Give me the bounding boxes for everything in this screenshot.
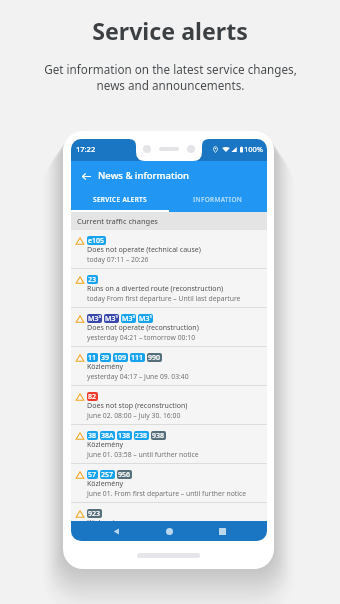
staticText: 100%: [244, 144, 264, 154]
staticText: M3¹: [139, 314, 152, 323]
staticText: M3³: [122, 314, 135, 323]
staticText: 23: [88, 275, 97, 284]
staticText: Current traffic changes: [77, 216, 158, 226]
button[interactable]: Home: [161, 523, 177, 539]
staticText: e105: [88, 236, 105, 245]
staticText: today 07:11 – 20:26: [87, 255, 149, 264]
staticText: June 01. 03:58 – until further notice: [87, 450, 199, 459]
staticText: Service alerts: [92, 15, 248, 47]
staticText: 938: [152, 431, 165, 440]
staticText: 923: [88, 509, 101, 518]
staticText: M3³: [88, 314, 101, 323]
button[interactable]: e105: [71, 230, 267, 268]
button[interactable]: 57: [71, 464, 267, 502]
staticText: Does not operate (technical cause): [87, 244, 201, 254]
staticText: 109: [114, 353, 127, 362]
button[interactable]: Recents: [214, 523, 230, 539]
staticText: 990: [148, 353, 161, 362]
staticText: Közlemény: [87, 361, 124, 371]
staticText: yesterday 04:21 – tomorrow 00:10: [87, 333, 196, 342]
staticText: INFORMATION: [193, 195, 243, 204]
staticText: Get information on the latest service ch…: [44, 61, 297, 93]
staticText: News & information: [98, 169, 189, 182]
staticText: 82: [88, 392, 97, 401]
button[interactable]: 11: [71, 347, 267, 385]
staticText: 11: [88, 353, 97, 362]
staticText: 38: [88, 431, 97, 440]
staticText: June 01. From first departure – until fu…: [87, 489, 247, 498]
staticText: Runs on a diverted route (reconstruction…: [87, 283, 224, 293]
staticText: today From first departure – Until last …: [87, 294, 241, 303]
staticText: 57: [88, 470, 97, 479]
button[interactable]: Back: [108, 523, 124, 539]
staticText: 138: [118, 431, 131, 440]
staticText: Does not stop (reconstruction): [87, 400, 188, 410]
button[interactable]: 923: [71, 503, 267, 521]
staticText: Közlemény: [87, 478, 124, 488]
button[interactable]: 82: [71, 386, 267, 424]
staticText: M3¹: [105, 314, 118, 323]
button[interactable]: 23: [71, 269, 267, 307]
staticText: yesterday 04:17 – June 09. 03:40: [87, 372, 189, 381]
staticText: Does not operate (reconstruction): [87, 322, 199, 332]
button[interactable]: Back: [78, 168, 94, 184]
staticText: Közlemény: [87, 439, 124, 449]
button[interactable]: INFORMATION: [169, 190, 267, 212]
staticText: 111: [131, 353, 144, 362]
button[interactable]: SERVICE ALERTS: [71, 190, 169, 212]
button[interactable]: M3³: [71, 308, 267, 346]
staticText: 238: [135, 431, 148, 440]
staticText: 17:22: [76, 144, 96, 154]
staticText: 257: [101, 470, 114, 479]
staticText: Közlemény: [87, 517, 124, 527]
staticText: June 02. 08:00 – July 30. 16:00: [87, 411, 181, 420]
staticText: SERVICE ALERTS: [93, 195, 147, 204]
button[interactable]: 38: [71, 425, 267, 463]
staticText: 38A: [101, 431, 114, 440]
staticText: 956: [118, 470, 131, 479]
staticText: 39: [101, 353, 110, 362]
